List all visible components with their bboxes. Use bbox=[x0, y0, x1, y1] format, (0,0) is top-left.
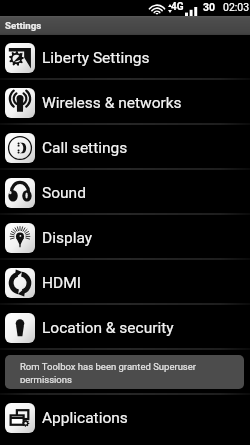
button[interactable]: Accounts & sync bbox=[0, 350, 250, 395]
button[interactable]: HDMI bbox=[0, 260, 250, 305]
staticText: Settings bbox=[5, 20, 42, 31]
staticText: Display bbox=[42, 229, 93, 247]
button[interactable]: Applications bbox=[0, 395, 250, 440]
other: Wi-Fi bbox=[149, 2, 165, 15]
staticText: Applications bbox=[42, 409, 128, 427]
staticText: Call settings bbox=[42, 139, 128, 157]
staticText: Wireless & networks bbox=[42, 94, 182, 112]
button[interactable]: Location & security bbox=[0, 305, 250, 350]
staticText: Location & security bbox=[42, 319, 174, 337]
staticText: 4G bbox=[171, 1, 184, 13]
staticText: HDMI bbox=[42, 274, 81, 292]
staticText: Rom Toolbox has been granted Superuser p… bbox=[20, 361, 229, 383]
staticText: Accounts & sync bbox=[42, 364, 157, 382]
staticText: Sound bbox=[42, 184, 86, 202]
button[interactable]: Call settings bbox=[0, 125, 250, 170]
staticText: 02:03 bbox=[223, 1, 250, 13]
staticText: 30 bbox=[203, 1, 216, 13]
staticText: Liberty Settings bbox=[42, 49, 150, 67]
button[interactable]: Display bbox=[0, 215, 250, 260]
button[interactable]: Liberty Settings bbox=[0, 35, 250, 80]
button[interactable]: Sound bbox=[0, 170, 250, 215]
button[interactable]: Wireless & networks bbox=[0, 80, 250, 125]
